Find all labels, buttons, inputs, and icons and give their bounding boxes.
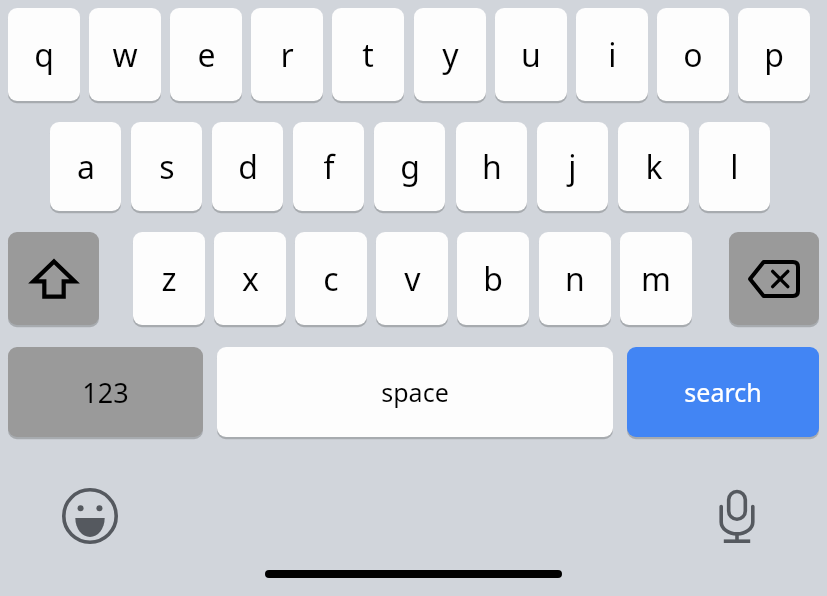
staticText: z [161,257,177,301]
button[interactable]: k [618,122,689,211]
staticText: y [442,33,459,77]
staticText: k [645,145,663,189]
button[interactable]: Delete [729,232,819,325]
staticText: b [483,257,503,301]
staticText: n [565,257,585,301]
button[interactable]: r [251,8,323,101]
button[interactable]: n [539,232,611,325]
staticText: g [400,145,420,189]
staticText: f [323,145,335,189]
staticText: o [683,33,703,77]
button[interactable]: m [620,232,692,325]
button[interactable]: o [657,8,729,101]
button[interactable]: x [214,232,286,325]
button[interactable]: 123 [8,347,203,437]
staticText: c [323,257,339,301]
button[interactable]: p [738,8,810,101]
staticText: j [568,145,577,189]
staticText: i [608,33,617,77]
button[interactable]: s [131,122,202,211]
staticText: search [684,375,762,409]
staticText: a [77,145,95,189]
button[interactable]: j [537,122,608,211]
button[interactable]: w [89,8,161,101]
button[interactable]: a [50,122,121,211]
staticText: m [641,257,671,301]
staticText: w [112,33,138,77]
staticText: 123 [82,374,129,411]
staticText: r [280,33,294,77]
button[interactable]: b [457,232,529,325]
button[interactable]: search [627,347,819,437]
staticText: l [730,145,739,189]
staticText: d [238,145,258,189]
button[interactable]: u [495,8,567,101]
button[interactable]: Voice input [703,482,771,550]
button[interactable]: g [374,122,445,211]
staticText: u [521,33,541,77]
button[interactable]: h [456,122,527,211]
button[interactable]: v [376,232,448,325]
staticText: v [404,257,421,301]
button[interactable]: f [293,122,364,211]
staticText: space [381,375,449,409]
button[interactable]: i [576,8,648,101]
button[interactable]: space [217,347,613,437]
button[interactable]: l [699,122,770,211]
staticText: p [764,33,784,77]
staticText: x [242,257,259,301]
button[interactable]: c [295,232,367,325]
button[interactable]: t [332,8,404,101]
button[interactable]: Emoji [56,482,124,550]
staticText: h [482,145,502,189]
staticText: s [159,145,175,189]
staticText: q [34,33,54,77]
button[interactable]: z [133,232,205,325]
staticText: e [197,33,216,77]
button[interactable]: q [8,8,80,101]
staticText: t [362,33,374,77]
button[interactable]: Shift [8,232,99,325]
button[interactable]: y [414,8,486,101]
button[interactable]: d [212,122,283,211]
button[interactable]: e [170,8,242,101]
